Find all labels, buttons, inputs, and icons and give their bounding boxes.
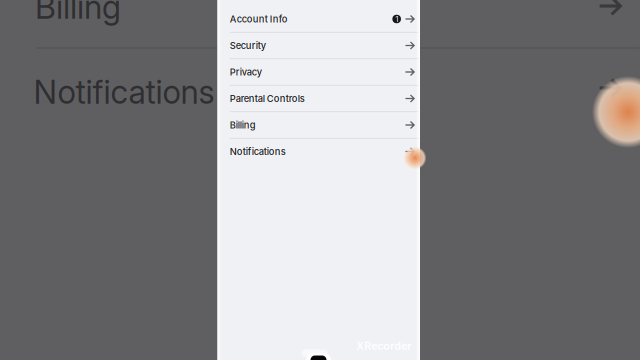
button[interactable]: Notifications <box>217 139 420 164</box>
staticText: Parental Controls <box>230 93 305 104</box>
staticText: Billing <box>230 119 256 131</box>
staticText: Notifications <box>33 72 214 111</box>
staticText: Security <box>230 40 266 51</box>
button[interactable]: Billing <box>217 112 420 138</box>
staticText: Billing <box>35 0 121 26</box>
button[interactable]: Parental Controls <box>217 86 420 111</box>
staticText: Privacy <box>230 66 262 78</box>
staticText: 1 <box>395 14 398 24</box>
button[interactable]: Privacy <box>217 59 420 85</box>
button[interactable]: Security <box>217 33 420 58</box>
staticText: Notifications <box>230 146 286 157</box>
button[interactable]: Account Info <box>217 6 420 32</box>
staticText: XRecorder <box>356 339 411 352</box>
staticText: Account Info <box>230 13 288 25</box>
